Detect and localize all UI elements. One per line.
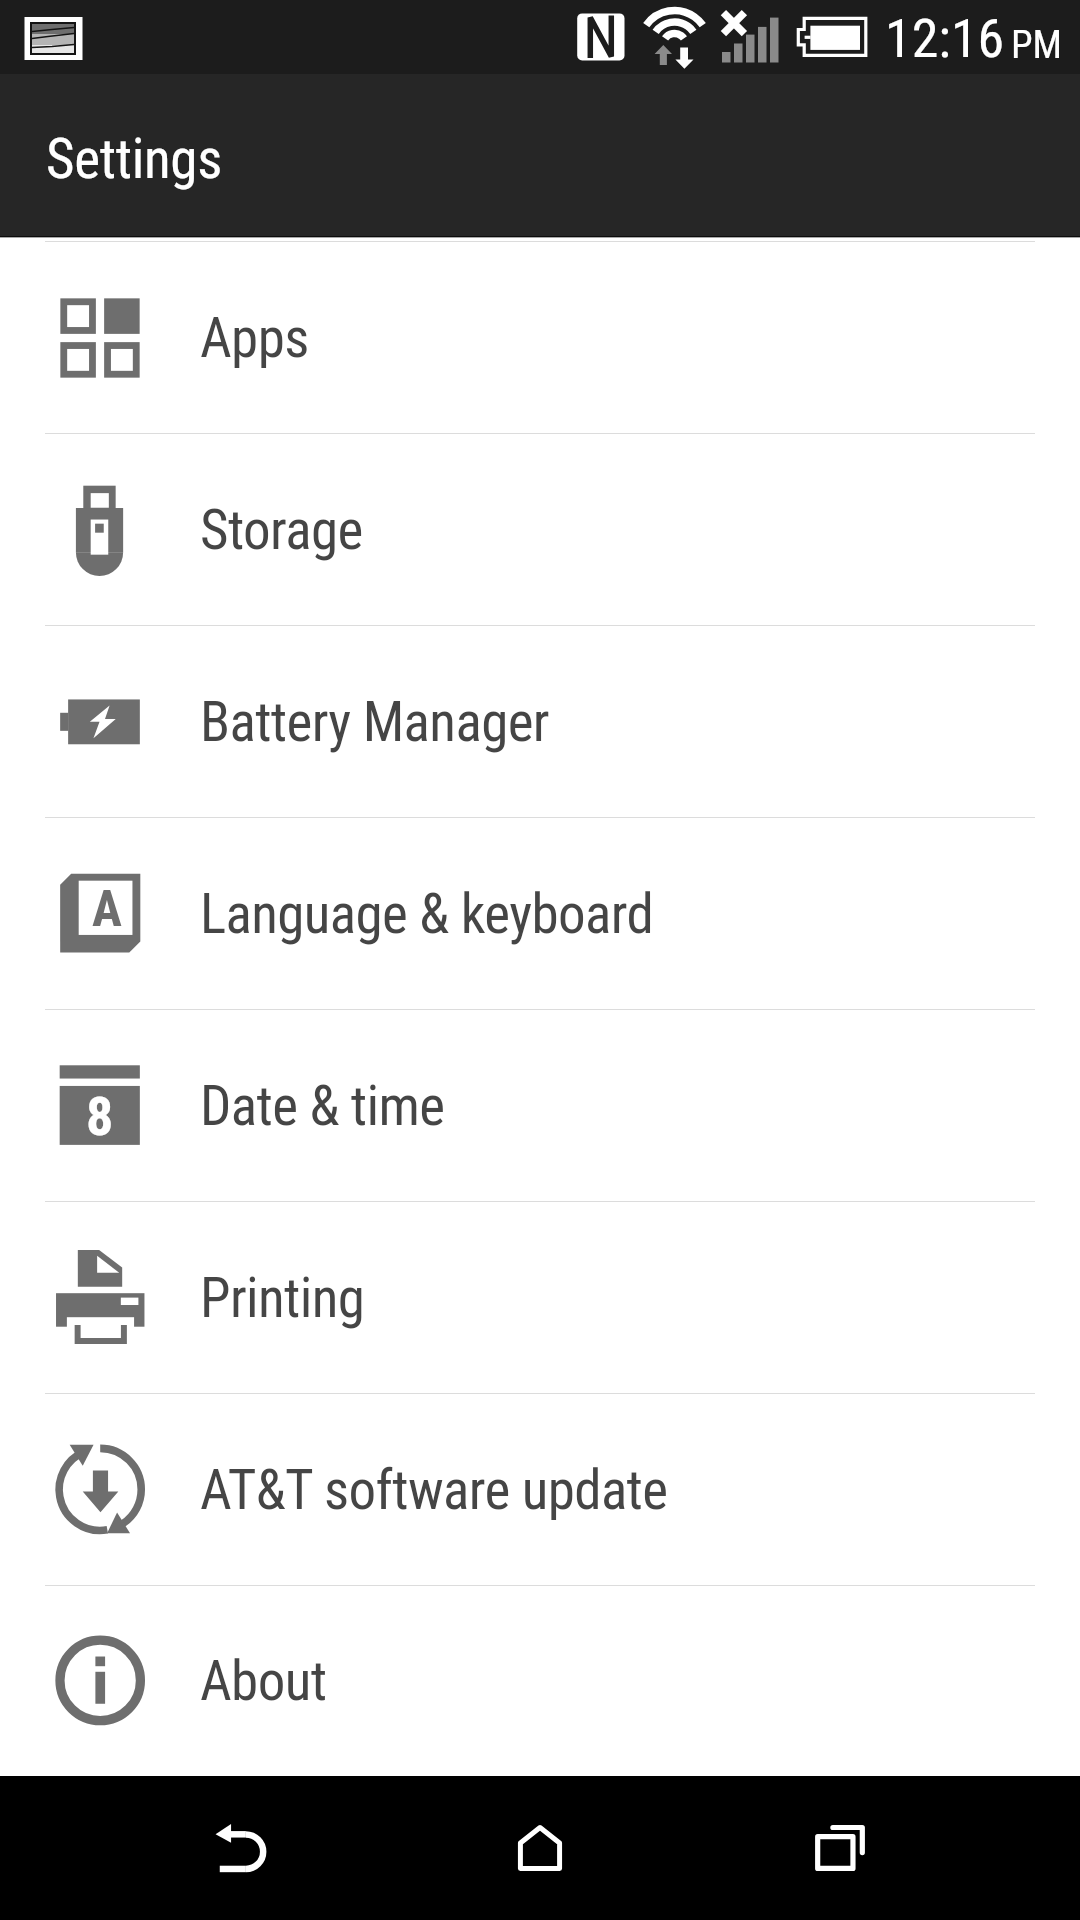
staticText: 12:16	[885, 7, 1005, 70]
staticText: Battery Manager	[200, 690, 550, 754]
button[interactable]: AT&T software update	[0, 1393, 1080, 1585]
staticText: PM	[1011, 22, 1063, 68]
staticText: Storage	[200, 498, 363, 562]
staticText: Settings	[46, 127, 222, 191]
staticText: Printing	[200, 1266, 365, 1330]
staticText: AT&T software update	[200, 1458, 668, 1522]
button[interactable]: Apps	[0, 241, 1080, 433]
staticText: About	[200, 1649, 327, 1713]
button[interactable]: About	[0, 1585, 1080, 1776]
button[interactable]: A	[0, 817, 1080, 1009]
button[interactable]: Storage	[0, 433, 1080, 625]
button[interactable]: Home	[440, 1776, 640, 1920]
button[interactable]: Battery Manager	[0, 625, 1080, 817]
staticText: Apps	[200, 306, 309, 370]
button[interactable]: Printing	[0, 1201, 1080, 1393]
staticText: Date & time	[200, 1074, 445, 1138]
staticText: A	[92, 880, 122, 939]
button[interactable]: 8	[0, 1009, 1080, 1201]
button[interactable]: Back	[141, 1776, 341, 1920]
staticText: Language & keyboard	[200, 882, 654, 946]
button[interactable]: Recent apps	[740, 1776, 940, 1920]
staticText: 8	[86, 1085, 114, 1148]
